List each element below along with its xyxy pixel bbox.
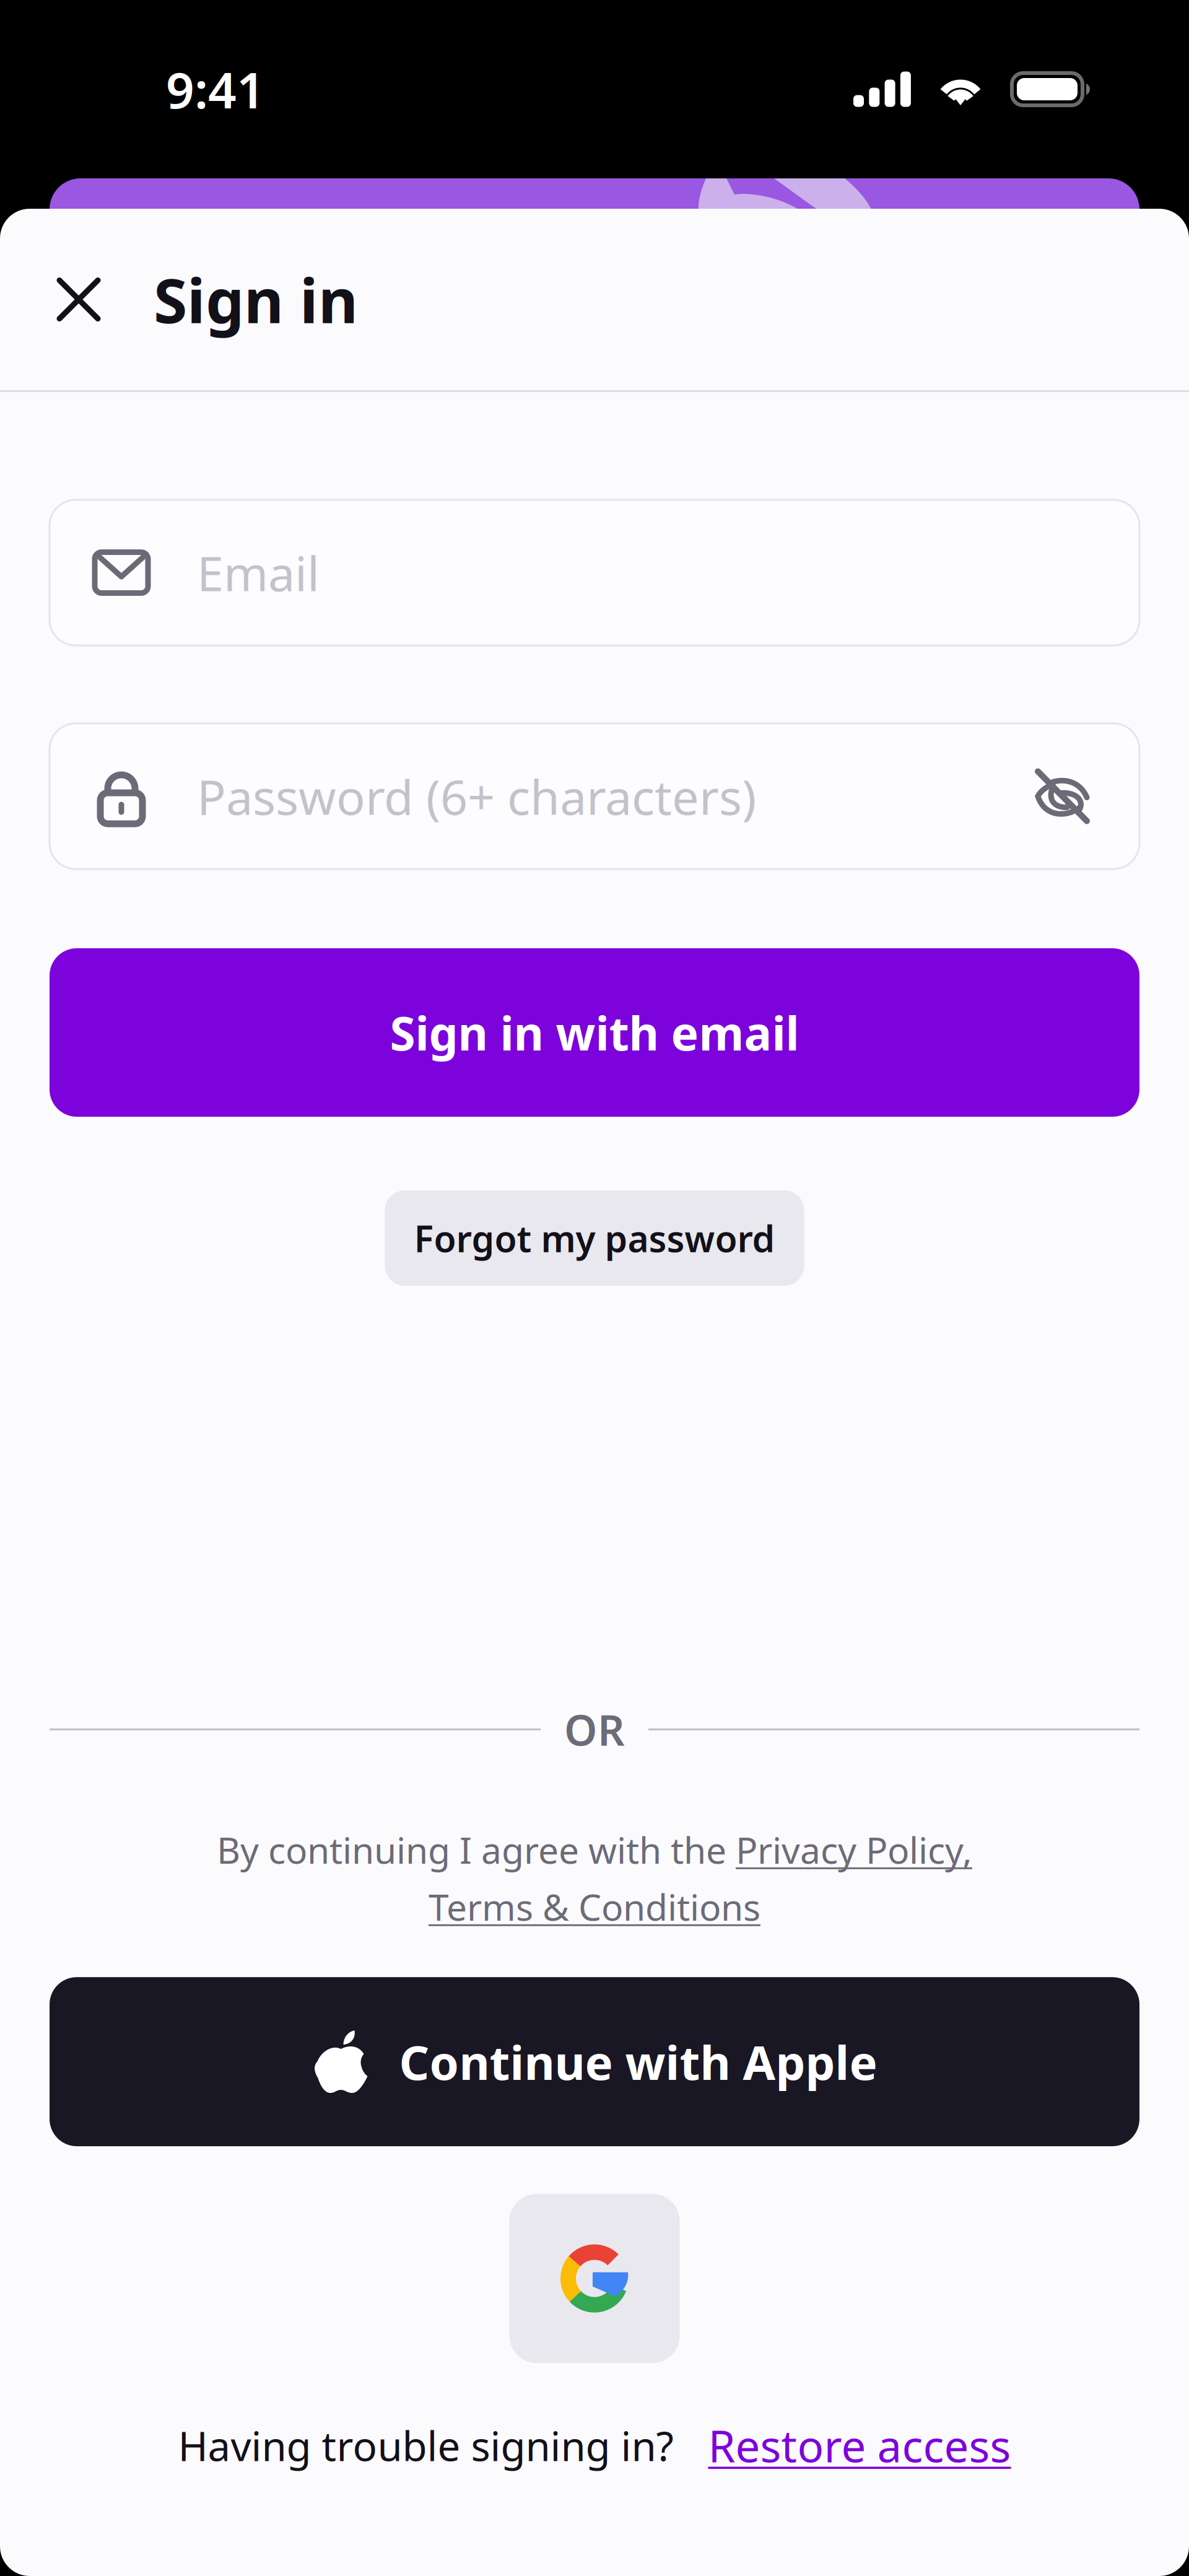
- staticText: Restore access: [708, 2416, 1011, 2474]
- staticText: Terms & Conditions: [429, 1882, 760, 1931]
- button[interactable]: Sign in with email: [50, 948, 1139, 1117]
- button[interactable]: Close: [34, 253, 123, 346]
- button[interactable]: Privacy Policy,: [736, 1825, 972, 1874]
- staticText: Forgot my password: [414, 1214, 775, 1262]
- staticText: Sign in with email: [390, 1002, 799, 1063]
- button[interactable]: Terms & Conditions: [429, 1882, 760, 1931]
- staticText: OR: [564, 1701, 625, 1757]
- staticText: Privacy Policy,: [736, 1825, 972, 1874]
- button[interactable]: Continue with Google: [509, 2194, 680, 2363]
- staticText: Having trouble signing in?: [178, 2418, 673, 2472]
- staticText: 9:41: [166, 56, 265, 122]
- staticText: Continue with Apple: [399, 2030, 877, 2093]
- button[interactable]: Continue with Apple: [50, 1977, 1139, 2146]
- staticText: Email: [197, 541, 320, 604]
- button[interactable]: Email: [50, 500, 1139, 645]
- button[interactable]: Forgot my password: [385, 1190, 804, 1286]
- button[interactable]: Password (6+ characters): [50, 723, 1139, 869]
- staticText: Sign in: [154, 259, 358, 340]
- staticText: By continuing I agree with the: [217, 1825, 736, 1874]
- button[interactable]: Restore access: [708, 2416, 1011, 2474]
- staticText: Password (6+ characters): [197, 764, 756, 828]
